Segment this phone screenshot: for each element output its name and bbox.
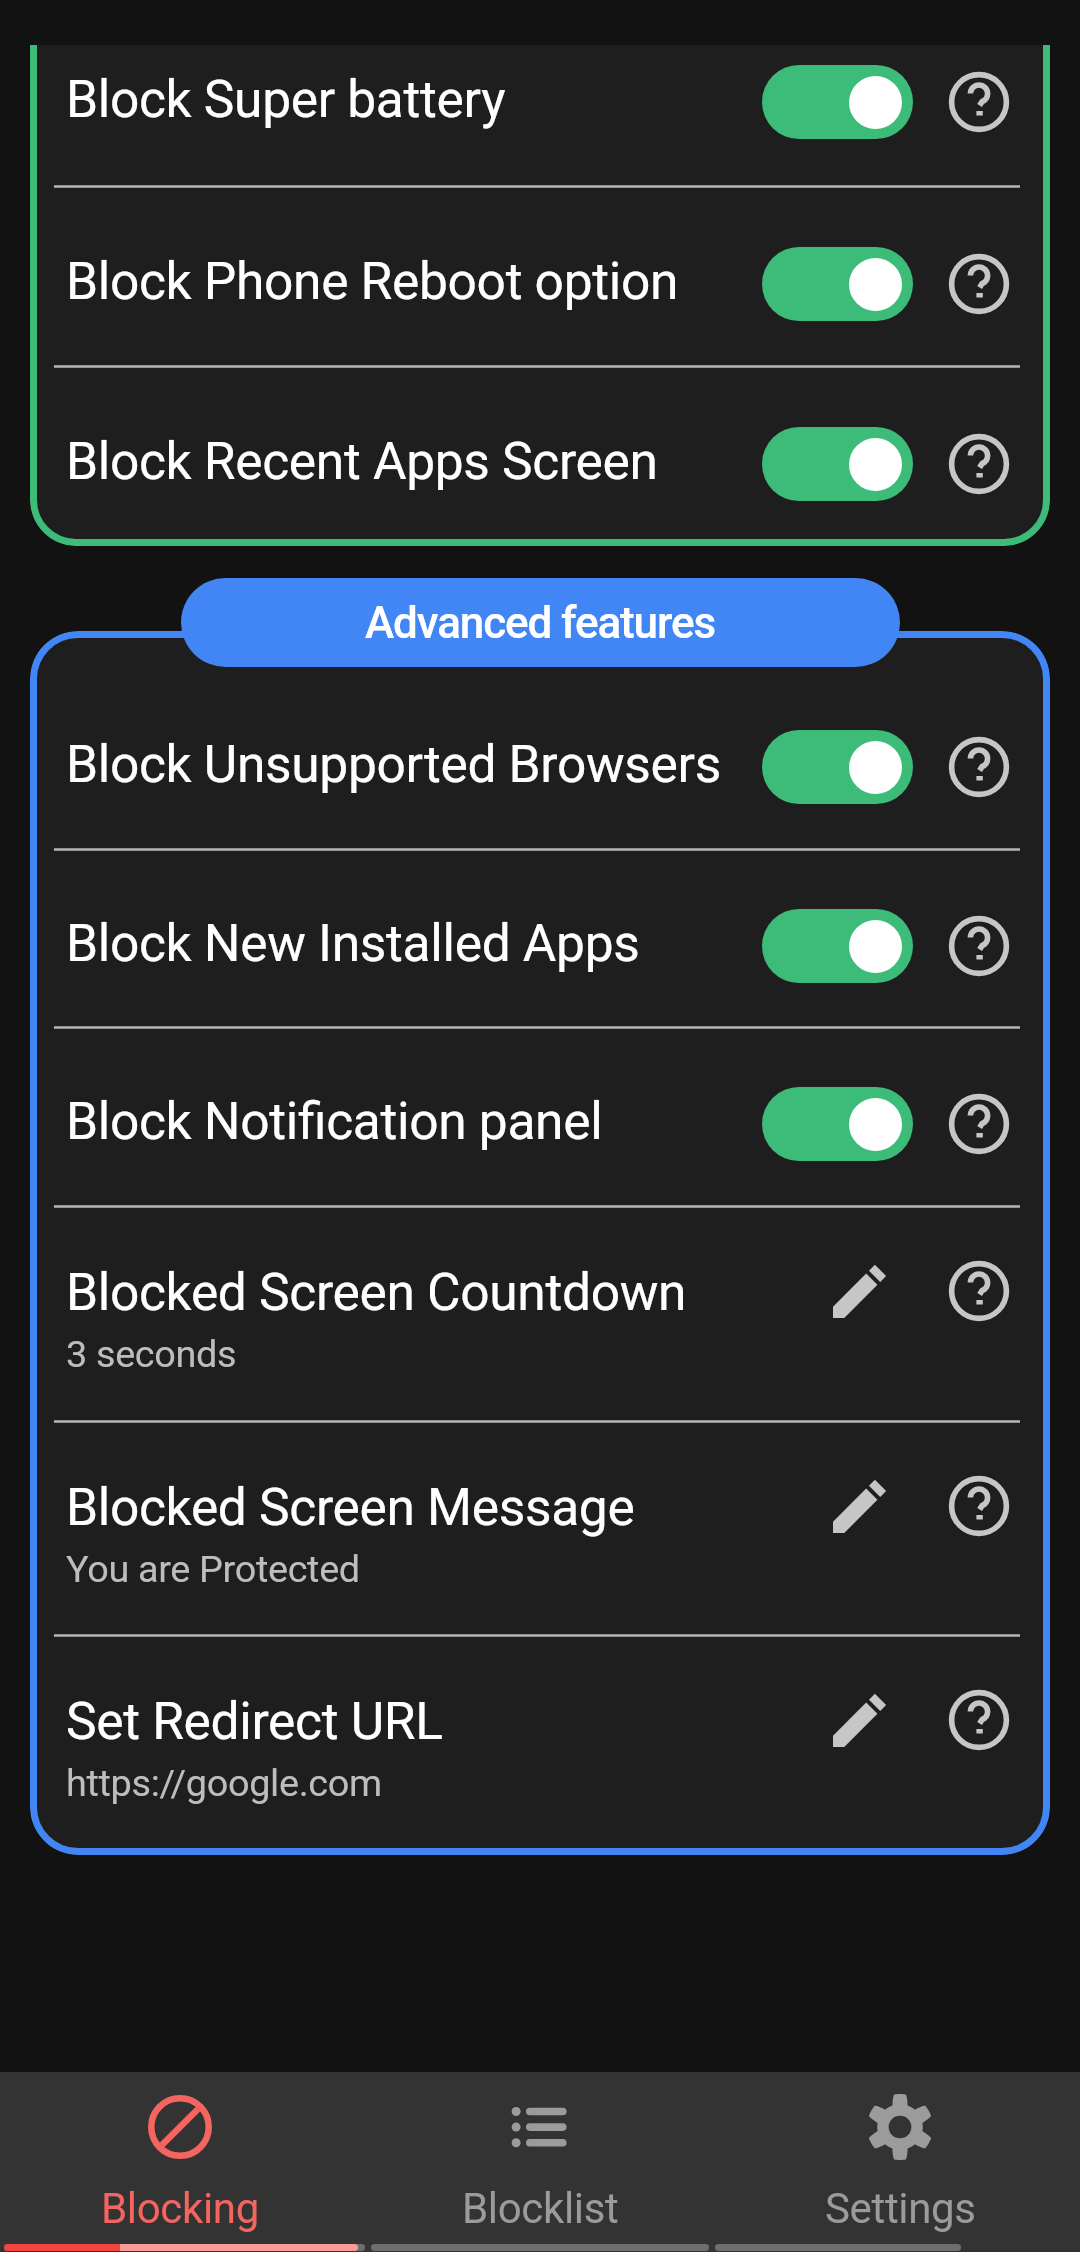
button[interactable]: Set Redirect URL bbox=[51, 1637, 1029, 1849]
button[interactable]: Help bbox=[943, 910, 1015, 982]
staticText: Block New Installed Apps bbox=[66, 913, 640, 973]
button[interactable]: Toggle setting bbox=[762, 1087, 913, 1161]
staticText: Block Super battery bbox=[66, 69, 506, 129]
button[interactable]: Block Super battery bbox=[51, 45, 1029, 185]
button[interactable]: Help bbox=[943, 248, 1015, 320]
staticText: Block Phone Reboot option bbox=[66, 251, 679, 311]
button[interactable]: Help bbox=[943, 428, 1015, 500]
staticText: Block Notification panel bbox=[66, 1091, 603, 1151]
button[interactable]: Toggle setting bbox=[762, 427, 913, 501]
staticText: Blocked Screen Countdown bbox=[66, 1262, 687, 1322]
staticText: 3 seconds bbox=[66, 1332, 237, 1376]
staticText: Blocked Screen Message bbox=[66, 1477, 635, 1537]
staticText: Settings bbox=[825, 2184, 976, 2233]
button[interactable]: Edit bbox=[824, 1470, 896, 1542]
button[interactable]: Blocked Screen Countdown bbox=[51, 1208, 1029, 1420]
staticText: Blocking bbox=[101, 2184, 259, 2233]
button[interactable]: Advanced features bbox=[181, 578, 900, 667]
button[interactable]: Toggle setting bbox=[762, 909, 913, 983]
staticText: https://google.com bbox=[66, 1761, 382, 1805]
button[interactable]: Help bbox=[943, 1088, 1015, 1160]
button[interactable]: Toggle setting bbox=[762, 247, 913, 321]
button[interactable]: Edit bbox=[824, 1684, 896, 1756]
button[interactable]: Blocked Screen Message bbox=[51, 1423, 1029, 1634]
button[interactable]: Edit bbox=[824, 1255, 896, 1327]
button[interactable]: Settings bbox=[720, 2072, 1080, 2252]
button[interactable]: Help bbox=[943, 1255, 1015, 1327]
staticText: Advanced features bbox=[365, 597, 716, 649]
staticText: Blocklist bbox=[462, 2184, 619, 2233]
button[interactable]: Block Recent Apps Screen bbox=[51, 368, 1029, 545]
staticText: Block Unsupported Browsers bbox=[66, 734, 721, 794]
button[interactable]: Block Notification panel bbox=[51, 1029, 1029, 1205]
button[interactable]: Blocklist bbox=[360, 2072, 720, 2252]
button[interactable]: Block Phone Reboot option bbox=[51, 188, 1029, 365]
button[interactable]: Help bbox=[943, 1684, 1015, 1756]
button[interactable]: Help bbox=[943, 66, 1015, 138]
staticText: Block Recent Apps Screen bbox=[66, 431, 658, 491]
button[interactable]: Blocking bbox=[0, 2072, 360, 2252]
button[interactable]: Block Unsupported Browsers bbox=[51, 672, 1029, 848]
button[interactable]: Toggle setting bbox=[762, 730, 913, 804]
staticText: Set Redirect URL bbox=[66, 1691, 443, 1751]
staticText: You are Protected bbox=[66, 1547, 360, 1591]
button[interactable]: Block New Installed Apps bbox=[51, 851, 1029, 1026]
button[interactable]: Help bbox=[943, 1470, 1015, 1542]
button[interactable]: Toggle setting bbox=[762, 65, 913, 139]
button[interactable]: Help bbox=[943, 731, 1015, 803]
